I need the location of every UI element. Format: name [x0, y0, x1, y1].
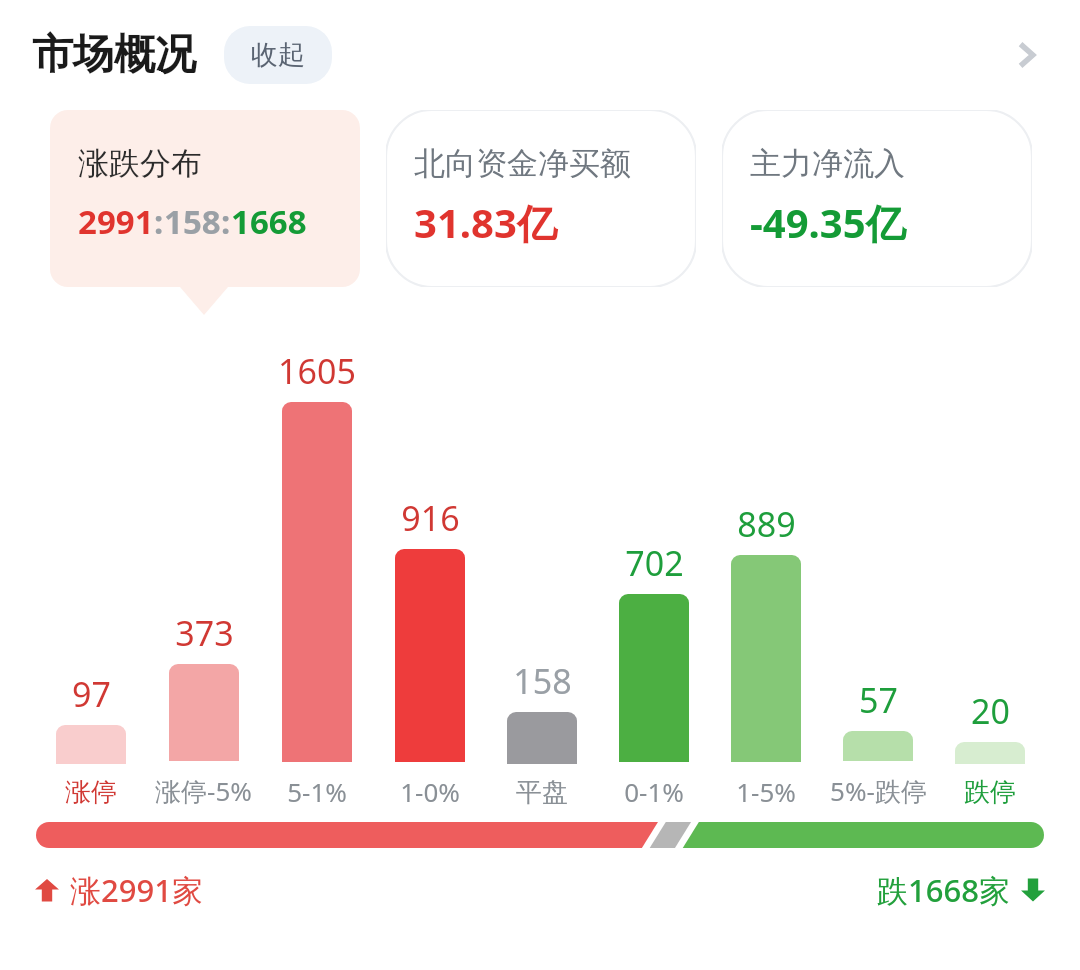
- button[interactable]: 57: [822, 325, 934, 815]
- staticText: 57: [859, 677, 898, 723]
- button[interactable]: 涨跌分布: [50, 110, 360, 287]
- staticText: 北向资金净买额: [414, 144, 631, 183]
- staticText: 1668: [231, 199, 307, 244]
- staticText: 主力净流入: [750, 144, 905, 183]
- button[interactable]: 主力净流入: [722, 110, 1032, 287]
- staticText: 收起: [251, 38, 305, 72]
- button[interactable]: 跌1668家: [877, 869, 1046, 911]
- staticText: 平盘: [516, 776, 568, 809]
- button[interactable]: 北向资金净买额: [386, 110, 696, 287]
- button[interactable]: 展开更多: [998, 27, 1054, 83]
- button[interactable]: 889: [710, 325, 822, 815]
- staticText: 涨跌分布: [78, 144, 202, 183]
- staticText: :: [154, 199, 164, 244]
- staticText: 1-0%: [400, 774, 460, 809]
- button[interactable]: 702: [598, 325, 710, 815]
- staticText: 涨2991家: [70, 869, 203, 911]
- staticText: -49.35亿: [750, 195, 906, 250]
- button[interactable]: 158: [486, 325, 598, 815]
- staticText: 889: [737, 501, 796, 547]
- staticText: 373: [175, 610, 234, 656]
- button[interactable]: 373: [147, 325, 260, 815]
- staticText: 市场概况: [32, 29, 196, 81]
- button[interactable]: 收起: [224, 26, 332, 84]
- staticText: 702: [625, 540, 684, 586]
- staticText: 916: [401, 495, 460, 541]
- staticText: 1-5%: [736, 774, 796, 809]
- staticText: 5-1%: [287, 774, 347, 809]
- staticText: 跌停: [964, 776, 1016, 809]
- staticText: 0-1%: [624, 774, 684, 809]
- staticText: 158: [513, 658, 572, 704]
- button[interactable]: 916: [373, 325, 486, 815]
- button[interactable]: 1605: [260, 325, 373, 815]
- staticText: 跌1668家: [877, 869, 1010, 911]
- button[interactable]: 涨2991家: [34, 869, 203, 911]
- button[interactable]: 97: [34, 325, 147, 815]
- staticText: 20: [971, 688, 1010, 734]
- staticText: 31.83亿: [414, 195, 557, 250]
- staticText: 5%-跌停: [830, 773, 927, 809]
- staticText: 涨停: [65, 776, 117, 809]
- staticText: 158: [164, 199, 221, 244]
- staticText: :: [221, 199, 231, 244]
- button[interactable]: 20: [934, 325, 1046, 815]
- staticText: 1605: [278, 348, 356, 394]
- staticText: 97: [72, 671, 111, 717]
- staticText: 涨停-5%: [155, 773, 252, 809]
- staticText: 2991: [78, 199, 154, 244]
